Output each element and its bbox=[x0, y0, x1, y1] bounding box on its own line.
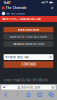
button[interactable]: Bookmarks bbox=[34, 92, 46, 98]
staticText: SIGN IN TO YOUR ACCOUNT bbox=[10, 35, 47, 38]
staticText: SAVE 70% — DIGITAL ACCESS bbox=[2, 17, 40, 21]
staticText: CONTINUE bbox=[21, 63, 35, 66]
staticText: Privacy bbox=[12, 78, 20, 82]
staticText: Terms bbox=[4, 78, 11, 82]
staticText: Remove Step Two bbox=[5, 55, 29, 59]
staticText: MY ACCOUNT bbox=[6, 12, 25, 15]
staticText: The Chronicle bbox=[6, 6, 27, 10]
staticText: Do Not Sell My Info bbox=[21, 78, 48, 82]
staticText: ᴀA bbox=[3, 86, 6, 89]
button[interactable]: Remove Step Two bbox=[4, 54, 53, 60]
button[interactable]: CONTINUE bbox=[4, 61, 53, 68]
button[interactable]: Tabs bbox=[46, 92, 57, 98]
button[interactable]: Close bbox=[49, 5, 55, 11]
button[interactable]: MANAGE SUBSCRIPTION bbox=[4, 41, 53, 47]
button[interactable]: SIGN IN TO YOUR ACCOUNT bbox=[4, 34, 53, 40]
button[interactable]: Share bbox=[23, 92, 34, 98]
staticText: 9:41 bbox=[3, 0, 10, 5]
button[interactable]: SUBSCRIBE NOW bbox=[4, 27, 53, 32]
button[interactable]: Back bbox=[0, 92, 11, 98]
staticText: chronicle.com bbox=[21, 86, 40, 89]
button[interactable]: ᴀA bbox=[1, 85, 56, 90]
staticText: MANAGE SUBSCRIPTION bbox=[13, 42, 44, 46]
staticText: SUBSCRIBE NOW bbox=[17, 28, 39, 31]
